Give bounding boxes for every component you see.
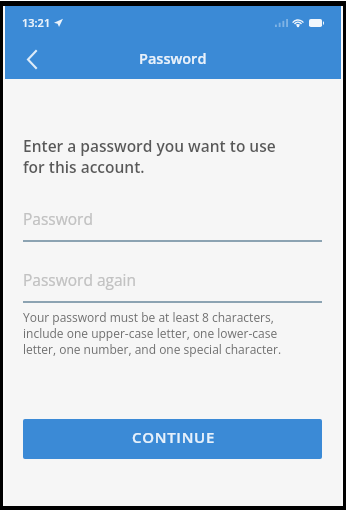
staticText: CONTINUE — [132, 427, 215, 447]
staticText: 13:21 — [22, 15, 51, 30]
button[interactable]: Password again — [23, 269, 322, 303]
staticText: Password — [23, 208, 93, 229]
staticText: Your password must be at least 8 charact… — [23, 310, 282, 358]
staticText: Password again — [23, 269, 136, 290]
button[interactable]: Back — [16, 43, 48, 75]
button[interactable]: CONTINUE — [23, 419, 322, 459]
staticText: Enter a password you want to use for thi… — [23, 136, 276, 178]
staticText: Password — [139, 49, 207, 69]
button[interactable]: Password — [23, 208, 322, 242]
